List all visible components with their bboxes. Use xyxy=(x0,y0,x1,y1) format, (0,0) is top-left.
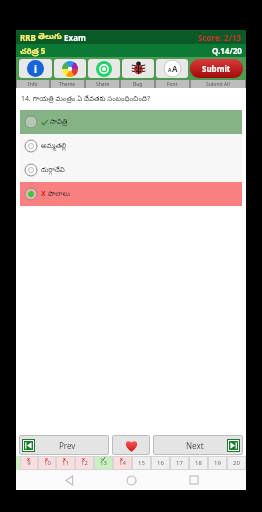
staticText: 19 xyxy=(214,459,221,467)
staticText: 12 xyxy=(81,459,88,467)
staticText: A xyxy=(172,63,178,74)
button[interactable]: 11 xyxy=(56,456,75,470)
button[interactable]: దుర్గాదేవి xyxy=(20,158,242,182)
button[interactable]: 9 xyxy=(20,456,38,470)
button[interactable]: 20 xyxy=(227,456,246,470)
staticText: Q.14/20 xyxy=(212,45,242,56)
staticText: Font xyxy=(167,81,178,88)
button[interactable]: Home xyxy=(121,470,141,490)
staticText: Next xyxy=(186,440,204,451)
button[interactable]: 15 xyxy=(132,456,151,470)
staticText: x xyxy=(27,456,30,463)
button[interactable]: Info xyxy=(19,59,52,78)
staticText: Exam xyxy=(62,32,86,43)
button[interactable]: Favorite xyxy=(112,435,150,455)
staticText: దుర్గాదేవి xyxy=(41,166,65,175)
button[interactable]: 14 xyxy=(113,456,132,470)
button[interactable]: Font xyxy=(156,59,188,78)
button[interactable]: 17 xyxy=(170,456,189,470)
button[interactable]: Bug xyxy=(122,59,154,78)
staticText: X xyxy=(41,189,46,199)
staticText: 15 xyxy=(138,459,145,467)
staticText: RRB xyxy=(20,32,38,43)
button[interactable]: 18 xyxy=(189,456,208,470)
staticText: 11 xyxy=(62,459,69,467)
staticText: 18 xyxy=(195,459,202,467)
staticText: Score: 2/13 xyxy=(198,32,242,43)
staticText: x xyxy=(120,456,123,463)
staticText: x xyxy=(82,456,85,463)
staticText: 14 xyxy=(119,459,126,467)
button[interactable]: Prev xyxy=(19,435,109,455)
staticText: సావిత్రి xyxy=(50,118,68,127)
button[interactable]: Submit xyxy=(190,59,243,78)
button[interactable]: 16 xyxy=(151,456,170,470)
staticText: అమ్మతల్లి xyxy=(41,142,67,151)
button[interactable]: 10 xyxy=(38,456,56,470)
button[interactable]: Theme xyxy=(54,59,86,78)
button[interactable]: Recents xyxy=(184,470,204,490)
button[interactable]: సావిత్రి xyxy=(20,110,242,134)
staticText: Info xyxy=(28,81,38,88)
staticText: A xyxy=(168,67,172,74)
staticText: 17 xyxy=(176,459,183,467)
staticText: తెలుగు xyxy=(38,32,62,43)
staticText: Submit All xyxy=(206,81,230,88)
button[interactable]: X xyxy=(20,182,242,206)
staticText: i xyxy=(34,62,37,76)
staticText: పొలాలు xyxy=(48,190,70,199)
staticText: 16 xyxy=(157,459,164,467)
staticText: Submit xyxy=(202,63,231,74)
button[interactable]: Share xyxy=(88,59,120,78)
button[interactable]: అమ్మతల్లి xyxy=(20,134,242,158)
staticText: Share xyxy=(96,81,110,88)
staticText: 20 xyxy=(233,459,240,467)
staticText: చరిత్ర 5 xyxy=(20,45,46,57)
staticText: x xyxy=(45,456,48,463)
button[interactable]: Back xyxy=(59,470,79,490)
staticText: 14. గాయత్రి మంత్రం ఏ దేవతకు సంబంధించింది… xyxy=(21,94,150,105)
staticText: 9 xyxy=(27,459,31,467)
button[interactable]: Next xyxy=(153,435,243,455)
button[interactable]: 13 xyxy=(94,456,113,470)
staticText: 13 xyxy=(100,459,107,467)
staticText: Theme xyxy=(59,81,76,88)
button[interactable]: 19 xyxy=(208,456,227,470)
staticText: x xyxy=(63,456,66,463)
button[interactable]: 12 xyxy=(75,456,94,470)
staticText: 10 xyxy=(44,459,51,467)
staticText: Prev xyxy=(59,440,76,451)
staticText: Bug xyxy=(133,81,143,88)
